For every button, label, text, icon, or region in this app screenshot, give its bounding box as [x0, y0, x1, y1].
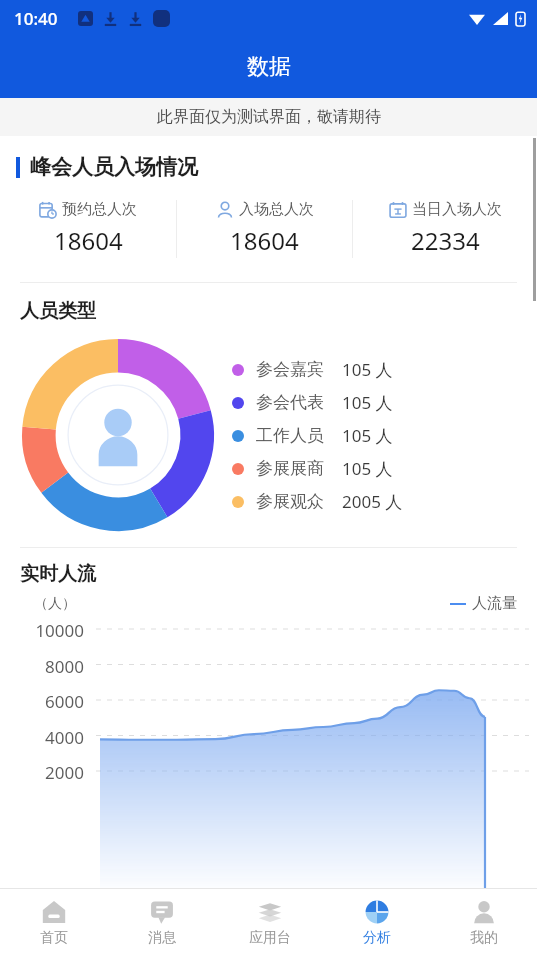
staticText: 6000 — [8, 690, 84, 713]
button[interactable]: 我的 — [430, 899, 537, 947]
staticText: 工作人员 — [256, 425, 342, 446]
staticText: 实时人流 — [20, 562, 96, 586]
staticText: 8000 — [8, 655, 84, 678]
staticText: 首页 — [40, 929, 68, 947]
button[interactable]: 首页 — [0, 899, 108, 947]
staticText: 105 人 — [342, 358, 393, 381]
staticText: 人流量 — [472, 594, 517, 613]
staticText: 18604 — [230, 224, 299, 257]
button[interactable]: 参展观众 — [232, 490, 403, 513]
staticText: 10000 — [8, 619, 84, 642]
staticText: 参展观众 — [256, 491, 342, 512]
button[interactable]: 参会嘉宾 — [232, 358, 393, 381]
staticText: 参展展商 — [256, 458, 342, 479]
button[interactable]: 分析 — [323, 899, 430, 947]
staticText: 105 人 — [342, 457, 393, 480]
staticText: （人） — [34, 595, 76, 613]
staticText: 分析 — [363, 929, 391, 947]
staticText: 入场总人次 — [239, 200, 314, 219]
staticText: 22334 — [411, 224, 480, 257]
staticText: 105 人 — [342, 424, 393, 447]
staticText: 消息 — [148, 929, 176, 947]
staticText: 18604 — [54, 224, 123, 257]
button[interactable]: 消息 — [108, 899, 216, 947]
staticText: 2000 — [8, 761, 84, 784]
staticText: 10:40 — [14, 7, 58, 30]
button[interactable]: 工作人员 — [232, 424, 393, 447]
staticText: 数据 — [247, 53, 291, 81]
staticText: 此界面仅为测试界面，敬请期待 — [157, 107, 381, 127]
staticText: 我的 — [470, 929, 498, 947]
button[interactable]: 应用台 — [216, 899, 323, 947]
staticText: 人员类型 — [20, 299, 96, 323]
staticText: 预约总人次 — [62, 200, 137, 219]
button[interactable]: 入场总人次 — [177, 200, 352, 257]
staticText: 应用台 — [249, 929, 291, 947]
staticText: 4000 — [8, 726, 84, 749]
staticText: 105 人 — [342, 391, 393, 414]
staticText: 参会代表 — [256, 392, 342, 413]
staticText: 2005 人 — [342, 490, 403, 513]
button[interactable]: 当日入场人次 — [353, 200, 537, 257]
staticText: 峰会人员入场情况 — [30, 154, 198, 180]
button[interactable]: 预约总人次 — [0, 200, 176, 257]
button[interactable]: 参展展商 — [232, 457, 393, 480]
staticText: 当日入场人次 — [412, 200, 502, 219]
button[interactable]: 参会代表 — [232, 391, 393, 414]
staticText: 参会嘉宾 — [256, 359, 342, 380]
